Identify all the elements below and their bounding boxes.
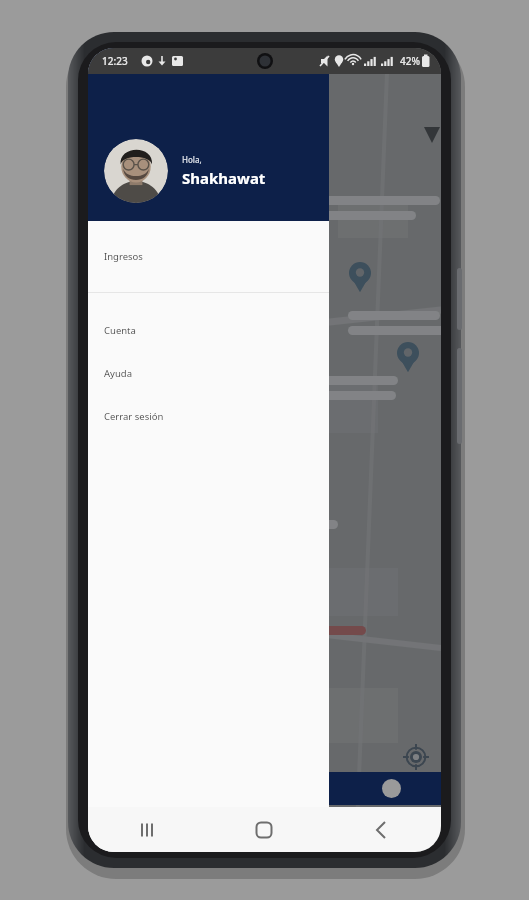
staticText: Cerrar sesión <box>104 410 164 423</box>
button[interactable]: Cerrar sesión <box>88 395 329 438</box>
button[interactable]: Ride option <box>382 779 401 798</box>
staticText: Shakhawat <box>182 168 266 188</box>
button[interactable]: Ingresos <box>88 235 329 278</box>
button[interactable]: Recents <box>88 807 205 852</box>
staticText: Ayuda <box>104 367 132 380</box>
staticText: Hola, <box>182 154 202 165</box>
button[interactable]: My location <box>403 744 429 770</box>
staticText: Cuenta <box>104 324 136 337</box>
button[interactable]: Ayuda <box>88 352 329 395</box>
staticText: 12:23 <box>102 54 128 68</box>
button[interactable]: Profile photo <box>104 139 266 203</box>
staticText: Ingresos <box>104 250 143 263</box>
staticText: 42% <box>400 54 420 68</box>
button[interactable]: Home <box>205 807 323 852</box>
button[interactable]: Back <box>323 807 441 852</box>
button[interactable]: Profile photo <box>104 139 168 203</box>
button[interactable]: Cuenta <box>88 309 329 352</box>
